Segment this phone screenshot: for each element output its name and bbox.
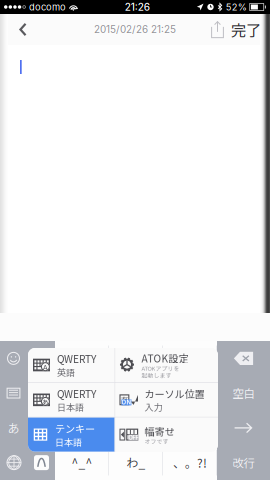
button[interactable]: あ	[55, 341, 109, 376]
staticText: わ_	[126, 454, 145, 471]
staticText: あ	[120, 393, 129, 406]
staticText: 起動します	[141, 371, 171, 379]
button[interactable]: Keyboard mode	[0, 341, 55, 376]
button[interactable]: は	[163, 376, 217, 411]
staticText: 2015/02/26 21:25	[94, 23, 176, 35]
button[interactable]: OFF	[115, 418, 218, 452]
staticText: た	[76, 384, 88, 402]
staticText: あ	[76, 350, 88, 367]
button[interactable]: Back	[6, 14, 40, 45]
staticText: ^_^	[71, 454, 92, 471]
staticText: 英語	[57, 365, 75, 379]
button[interactable]: あ	[115, 383, 218, 417]
staticText: docomo	[29, 1, 66, 13]
button[interactable]: た	[55, 376, 109, 411]
staticText: 完了	[231, 18, 261, 41]
staticText: 空白	[232, 385, 254, 401]
staticText: ATOK設定	[141, 351, 188, 365]
staticText: な	[130, 384, 142, 402]
staticText: 改行	[232, 454, 254, 471]
button[interactable]: Keyboard mode	[0, 376, 55, 411]
staticText: ON	[121, 399, 131, 406]
button[interactable]: さ	[163, 341, 217, 376]
button[interactable]: ま	[55, 410, 109, 445]
staticText: QWERTY	[57, 386, 96, 401]
button[interactable]: 完了	[231, 14, 261, 45]
button[interactable]: ATOK設定	[115, 348, 218, 382]
button[interactable]: Delete	[217, 341, 270, 376]
button[interactable]: ら	[163, 410, 217, 445]
staticText: QWERTY	[57, 351, 96, 366]
staticText: さ	[184, 350, 196, 367]
button[interactable]: A	[28, 348, 115, 382]
button[interactable]: Keyboard mode	[0, 410, 55, 445]
staticText: カーソル位置	[144, 386, 204, 401]
staticText: 入力	[144, 400, 162, 413]
staticText: 、。?!	[173, 454, 207, 471]
staticText: 日本語	[55, 435, 82, 448]
button[interactable]: か	[109, 341, 163, 376]
button[interactable]: ATOK	[28, 445, 55, 480]
staticText: 52%	[226, 1, 247, 13]
button[interactable]: テンキー	[28, 418, 115, 452]
button[interactable]: ^_^	[55, 445, 109, 480]
button[interactable]: Switch keyboard	[0, 445, 28, 480]
staticText: か	[130, 350, 142, 367]
staticText: ま	[76, 419, 88, 437]
button[interactable]: 改行	[217, 445, 270, 480]
staticText: あ	[42, 397, 49, 406]
button[interactable]: わ_	[109, 445, 163, 480]
staticText: 日本語	[57, 400, 84, 413]
staticText: や	[130, 419, 142, 437]
button[interactable]: Next candidate	[217, 410, 270, 445]
staticText: あ	[7, 419, 19, 437]
staticText: ATOKアプリを	[141, 364, 179, 372]
staticText: OFF	[128, 434, 138, 441]
staticText: 幅寄せ	[144, 424, 174, 438]
staticText: テンキー	[55, 421, 95, 436]
button[interactable]: 空白	[217, 376, 270, 411]
staticText: は	[184, 384, 196, 402]
button[interactable]: な	[109, 376, 163, 411]
staticText: A	[43, 361, 48, 372]
button[interactable]: 、。?!	[163, 445, 217, 480]
button[interactable]: や	[109, 410, 163, 445]
staticText: 21:26	[125, 1, 150, 13]
staticText: オフです	[144, 437, 168, 445]
button[interactable]: Share	[204, 14, 231, 45]
button[interactable]: あ	[28, 383, 115, 417]
